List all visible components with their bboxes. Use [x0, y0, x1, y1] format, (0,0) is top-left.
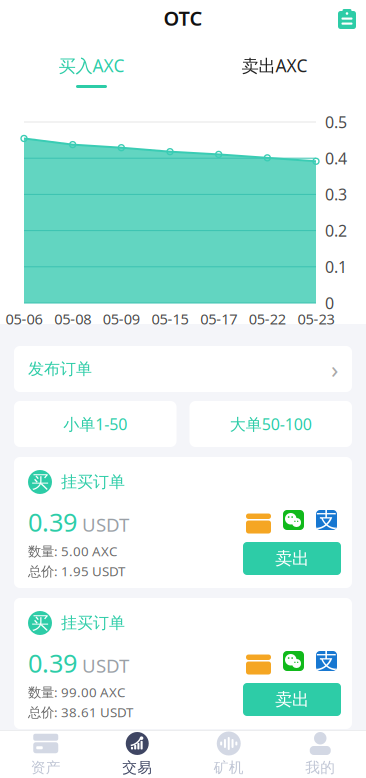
- staticText: 买: [31, 471, 48, 493]
- staticText: 05-17: [200, 309, 237, 328]
- staticText: OTC: [163, 5, 202, 31]
- staticText: 0.39: [28, 646, 77, 680]
- staticText: 05-23: [297, 309, 334, 328]
- staticText: 卖出: [275, 689, 309, 710]
- staticText: 大单50-100: [230, 413, 312, 435]
- staticText: 小单1-50: [63, 413, 127, 435]
- staticText: 发布订单: [28, 359, 92, 379]
- staticText: 挂买订单: [61, 472, 125, 492]
- staticText: 0.39: [28, 505, 77, 539]
- button[interactable]: 发布订单: [14, 346, 352, 392]
- staticText: 卖出: [275, 548, 309, 569]
- staticText: 交易: [122, 758, 152, 776]
- staticText: 总价: 38.61 USDT: [28, 703, 133, 721]
- staticText: 0.4: [325, 148, 347, 169]
- staticText: 挂买订单: [61, 613, 125, 633]
- button[interactable]: 交易: [91, 726, 183, 778]
- staticText: 0: [325, 292, 334, 314]
- staticText: USDT: [82, 512, 129, 537]
- button[interactable]: My orders: [328, 3, 366, 33]
- staticText: 05-22: [249, 309, 286, 328]
- staticText: 0.3: [325, 184, 347, 205]
- button[interactable]: 卖出AXC: [183, 36, 366, 98]
- staticText: USDT: [82, 653, 129, 678]
- staticText: 总价: 1.95 USDT: [28, 562, 125, 580]
- staticText: 05-15: [151, 309, 188, 328]
- staticText: 买入AXC: [58, 54, 124, 77]
- button[interactable]: 矿机: [183, 726, 274, 778]
- staticText: 0.2: [325, 220, 347, 241]
- button[interactable]: 卖出: [243, 542, 341, 575]
- staticText: 05-09: [103, 309, 140, 328]
- staticText: 05-08: [54, 309, 91, 328]
- staticText: 矿机: [214, 758, 244, 776]
- staticText: 数量: 5.00 AXC: [28, 542, 117, 560]
- staticText: 买: [31, 612, 48, 634]
- button[interactable]: 资产: [0, 726, 91, 778]
- button[interactable]: 买入AXC: [0, 36, 183, 98]
- staticText: 0.1: [325, 256, 347, 277]
- staticText: 支: [316, 648, 337, 674]
- button[interactable]: 卖出: [243, 683, 341, 716]
- button[interactable]: 我的: [274, 726, 366, 778]
- staticText: 数量: 99.00 AXC: [28, 683, 125, 701]
- staticText: ›: [331, 353, 338, 385]
- staticText: 05-06: [5, 309, 42, 328]
- staticText: 我的: [305, 758, 335, 776]
- button[interactable]: 大单50-100: [189, 401, 352, 447]
- button[interactable]: 小单1-50: [14, 401, 176, 447]
- staticText: 卖出AXC: [241, 54, 307, 77]
- staticText: 支: [316, 507, 337, 533]
- staticText: 0.5: [325, 111, 347, 133]
- staticText: 资产: [31, 758, 61, 776]
